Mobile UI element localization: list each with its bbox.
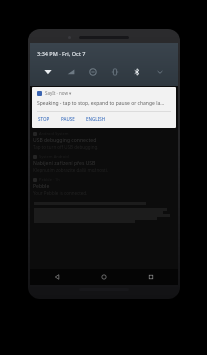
staticText: PAUSE xyxy=(61,116,75,122)
button[interactable]: Pebble · 1h xyxy=(33,177,175,196)
button[interactable]: Do not disturb xyxy=(85,64,101,80)
button[interactable]: Mobile signal xyxy=(63,64,79,80)
staticText: USB debugging connected xyxy=(33,137,97,144)
button[interactable]: STOP xyxy=(37,115,51,123)
button[interactable]: Android System xyxy=(33,131,175,150)
button[interactable]: Auto rotate xyxy=(107,64,123,80)
staticText: Your Pebble is connected. xyxy=(33,190,88,196)
button[interactable]: Home xyxy=(84,269,124,285)
staticText: System Android xyxy=(39,154,69,159)
staticText: Speaking - tap to stop, expand to pause … xyxy=(37,100,165,107)
button[interactable]: System Android xyxy=(33,154,175,173)
button[interactable]: Wi-Fi xyxy=(40,64,56,80)
button[interactable]: Back xyxy=(37,269,77,285)
staticText: 3:34 PM · Fri, Oct 7 xyxy=(37,50,86,57)
staticText: Klepnutím zobrazíte další možnosti. xyxy=(33,167,109,173)
button[interactable]: Recents xyxy=(131,269,171,285)
staticText: Android System xyxy=(39,131,69,136)
staticText: Nabíjení zařízení přes USB xyxy=(33,160,96,167)
staticText: Tap to turn off USB debugging. xyxy=(33,144,99,150)
button[interactable]: SayIt · now ▾ xyxy=(32,87,176,128)
staticText: STOP xyxy=(38,116,50,122)
staticText: SayIt · now ▾ xyxy=(45,90,72,96)
button[interactable]: Expand quick settings xyxy=(152,64,168,80)
staticText: Pebble xyxy=(33,183,50,190)
button[interactable]: Bluetooth xyxy=(129,64,145,80)
button[interactable]: PAUSE xyxy=(60,115,76,123)
button[interactable]: ENGLISH xyxy=(85,115,107,123)
staticText: ENGLISH xyxy=(86,116,106,122)
